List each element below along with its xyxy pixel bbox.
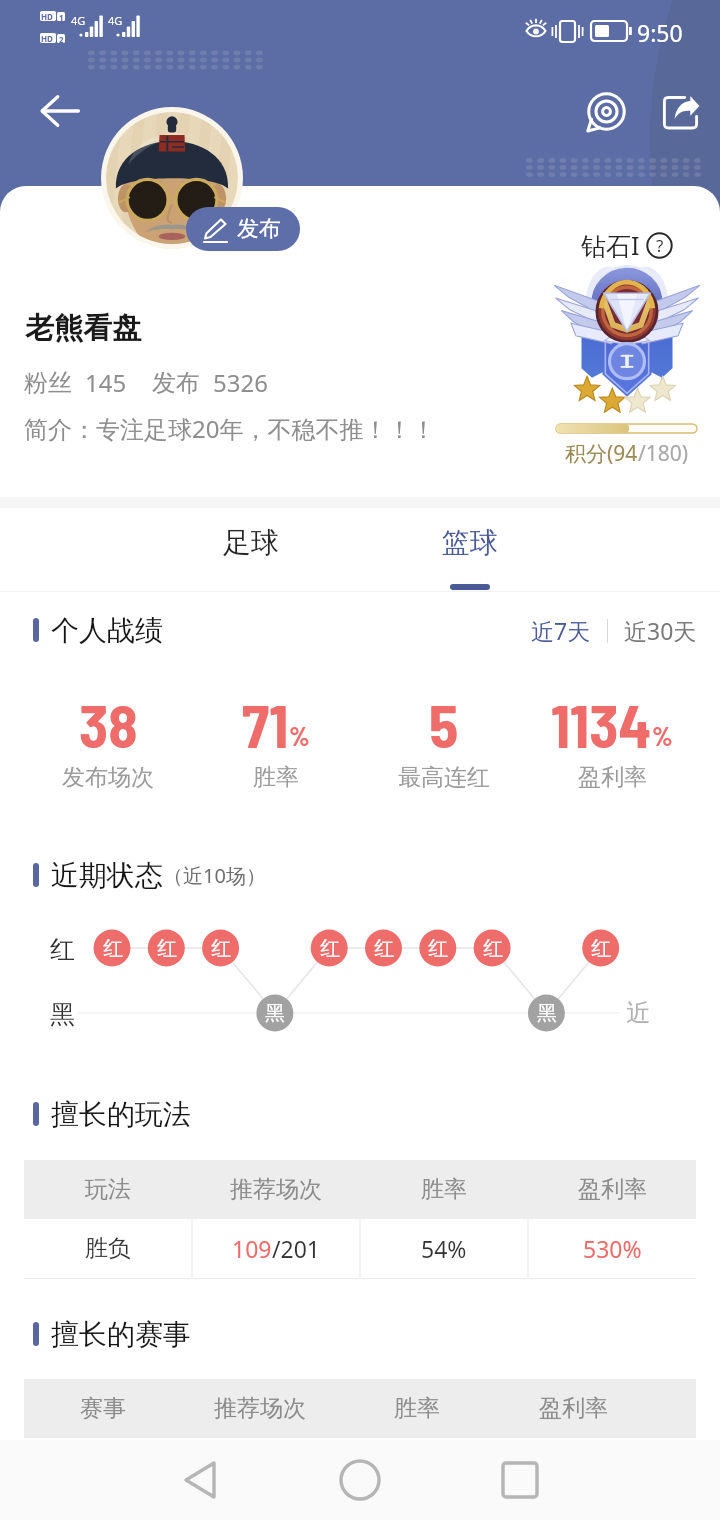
staticText: HD — [41, 11, 53, 22]
button[interactable]: 发布 — [186, 207, 300, 251]
button[interactable]: Back — [24, 75, 96, 147]
staticText: % — [289, 720, 310, 751]
staticText: 4G — [71, 13, 86, 28]
button[interactable]: 足球 — [181, 508, 321, 592]
staticText: 5 — [429, 688, 459, 760]
staticText: 擅长的玩法 — [51, 1097, 191, 1132]
button[interactable]: 红 — [474, 930, 511, 967]
staticText: 个人战绩 — [51, 613, 163, 648]
button[interactable]: 黑 — [256, 995, 293, 1032]
staticText: 9:50 — [637, 17, 683, 48]
staticText: 54% — [421, 1233, 467, 1264]
staticText: 红 — [591, 936, 611, 961]
staticText: 红 — [374, 936, 394, 961]
staticText: 老熊看盘 — [25, 310, 141, 347]
staticText: 简介：专注足球20年，不稳不推！！！ — [24, 412, 436, 445]
button[interactable]: Live room — [570, 75, 642, 147]
button[interactable]: Share — [644, 75, 716, 147]
staticText: 盈利率 — [578, 1175, 647, 1204]
staticText: 2 — [59, 34, 64, 45]
staticText: 红 — [157, 936, 177, 961]
staticText: 近30天 — [624, 615, 697, 646]
button[interactable]: 钻石I — [556, 228, 700, 468]
staticText: /180) — [638, 439, 689, 468]
staticText: 近7天 — [531, 615, 591, 646]
staticText: % — [652, 720, 673, 751]
staticText: 145 — [85, 366, 127, 399]
staticText: 红 — [211, 936, 231, 961]
button[interactable]: 黑 — [528, 995, 565, 1032]
staticText: 4G — [108, 13, 123, 28]
staticText: 盈利率 — [539, 1394, 608, 1423]
staticText: 1134 — [551, 688, 652, 760]
staticText: 红 — [103, 936, 123, 961]
button[interactable]: Avatar — [106, 112, 238, 244]
button[interactable]: 红 — [582, 930, 619, 967]
staticText: HD — [41, 33, 53, 44]
staticText: 擅长的赛事 — [51, 1317, 191, 1352]
staticText: 篮球 — [442, 525, 498, 560]
button[interactable]: 红 — [365, 930, 402, 967]
staticText: 红 — [50, 934, 75, 965]
staticText: 近期状态 — [51, 858, 163, 893]
staticText: 黑 — [50, 999, 75, 1030]
staticText: 530% — [583, 1233, 642, 1264]
staticText: 发布场次 — [62, 763, 154, 792]
staticText: /201 — [272, 1233, 321, 1264]
staticText: 胜率 — [421, 1175, 467, 1204]
staticText: 足球 — [223, 525, 279, 560]
staticText: 黑 — [265, 1001, 285, 1026]
staticText: 近 — [626, 998, 650, 1028]
staticText: 1 — [59, 12, 64, 23]
button[interactable]: 篮球 — [400, 508, 540, 592]
staticText: 红 — [483, 936, 503, 961]
staticText: 5326 — [213, 366, 268, 399]
staticText: （近10场） — [163, 862, 266, 889]
staticText: 赛事 — [80, 1394, 126, 1423]
button[interactable]: Back — [160, 1440, 240, 1520]
staticText: 最高连红 — [398, 763, 490, 792]
staticText: 红 — [428, 936, 448, 961]
staticText: 黑 — [537, 1001, 557, 1026]
button[interactable]: 红 — [419, 930, 456, 967]
staticText: 胜负 — [85, 1234, 131, 1263]
button[interactable]: 红 — [311, 930, 348, 967]
staticText: 盈利率 — [578, 763, 647, 792]
staticText: 胜率 — [394, 1394, 440, 1423]
button[interactable]: Recents — [480, 1440, 560, 1520]
staticText: 胜率 — [253, 763, 299, 792]
button[interactable]: 红 — [94, 930, 131, 967]
staticText: 109 — [232, 1233, 272, 1264]
staticText: 积分(94 — [565, 439, 638, 468]
button[interactable]: Home — [320, 1440, 400, 1520]
staticText: 粉丝 — [24, 368, 72, 398]
staticText: 推荐场次 — [214, 1394, 306, 1423]
button[interactable]: 红 — [202, 930, 239, 967]
staticText: 38 — [79, 688, 138, 760]
staticText: 发布 — [152, 368, 200, 398]
button[interactable]: 近30天 — [619, 611, 702, 650]
staticText: 玩法 — [85, 1175, 131, 1204]
staticText: 红 — [320, 936, 340, 961]
button[interactable]: 近7天 — [526, 611, 596, 650]
button[interactable]: 红 — [148, 930, 185, 967]
staticText: 发布 — [237, 215, 281, 243]
staticText: 推荐场次 — [230, 1175, 322, 1204]
staticText: 钻石I — [581, 228, 640, 262]
staticText: 71 — [242, 688, 289, 760]
staticText: ? — [656, 234, 664, 257]
